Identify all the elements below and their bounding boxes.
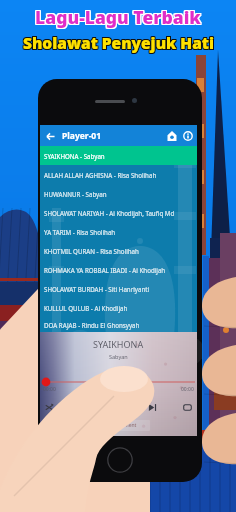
staticText: Sholawat Penyejuk Hati (22, 33, 213, 54)
staticText: SHOLAWAT BURDAH - Siti Hanriyanti (44, 285, 150, 293)
button[interactable]: Next (145, 400, 160, 415)
staticText: Sholawat Penyejuk Hati (23, 33, 214, 54)
button[interactable]: Back (43, 129, 57, 143)
staticText: Sholawat Penyejuk Hati (24, 32, 215, 53)
button[interactable]: Back (40, 125, 197, 146)
staticText: Lagu-Lagu Terbaik (35, 4, 201, 28)
button[interactable]: YA TARIM - Risa Sholihah (40, 222, 197, 241)
staticText: Lagu-Lagu Terbaik (36, 4, 202, 28)
button[interactable]: ALLAH ALLAH AGHISNA - Risa Sholihah (40, 165, 197, 184)
staticText: Lagu-Lagu Terbaik (36, 6, 202, 30)
button[interactable]: Home (107, 447, 133, 473)
staticText: Lagu-Lagu Terbaik (34, 4, 200, 28)
staticText: 00:00 (181, 386, 194, 393)
staticText: Lagu-Lagu Terbaik (35, 6, 201, 30)
staticText: YA TARIM - Risa Sholihah (44, 228, 116, 236)
staticText: Sholawat Penyejuk Hati (24, 31, 215, 52)
staticText: Sholawat Penyejuk Hati (22, 32, 213, 53)
staticText: Advertisement (102, 422, 137, 429)
button[interactable]: SYAIKHONA - Sabyan (40, 146, 197, 165)
staticText: Sholawat Penyejuk Hati (24, 33, 215, 54)
button[interactable]: KHOTMIL QURAN - Risa Sholihah (40, 241, 197, 260)
button[interactable]: SHOLAWAT NARIYAH - Ai Khodijah, Taufiq M… (40, 203, 197, 222)
staticText: Player-01 (62, 130, 102, 142)
button[interactable] (40, 378, 197, 386)
staticText: KHOTMIL QURAN - Risa Sholihah (44, 247, 139, 255)
staticText: SYAIKHONA - Sabyan (44, 152, 105, 160)
button[interactable]: KULLUL QULUB - Ai Khodijah (40, 298, 197, 317)
staticText: Sholawat Penyejuk Hati (23, 32, 214, 53)
staticText: Lagu-Lagu Terbaik (35, 5, 201, 29)
button[interactable]: Home (164, 128, 180, 144)
button[interactable]: Shuffle (42, 400, 57, 415)
staticText: Sholawat Penyejuk Hati (23, 31, 214, 52)
button[interactable]: Info (180, 128, 196, 144)
button[interactable]: ROHMAKA YA ROBBAL IBADI - Ai Khodijah (40, 260, 197, 279)
staticText: HUWANNUR - Sabyan (44, 190, 107, 198)
button[interactable]: HUWANNUR - Sabyan (40, 184, 197, 203)
staticText: DOA RAJAB - Rindu El Ghonsyyah (44, 321, 140, 329)
staticText: Lagu-Lagu Terbaik (34, 6, 200, 30)
button[interactable]: SHOLAWAT BURDAH - Siti Hanriyanti (40, 279, 197, 298)
button[interactable]: Repeat (180, 400, 195, 415)
staticText: ROHMAKA YA ROBBAL IBADI - Ai Khodijah (44, 266, 166, 274)
button[interactable]: DOA RAJAB - Rindu El Ghonsyyah (40, 317, 197, 332)
staticText: SHOLAWAT NARIYAH - Ai Khodijah, Taufiq M… (44, 209, 175, 217)
staticText: Sholawat Penyejuk Hati (22, 31, 213, 52)
staticText: Lagu-Lagu Terbaik (36, 5, 202, 29)
staticText: KULLUL QULUB - Ai Khodijah (44, 304, 128, 312)
staticText: ALLAH ALLAH AGHISNA - Risa Sholihah (44, 171, 157, 179)
staticText: Lagu-Lagu Terbaik (34, 5, 200, 29)
staticText: 00:00 (43, 386, 56, 393)
staticText: Sabyan (109, 353, 128, 360)
button[interactable]: Advertisement (88, 420, 150, 431)
staticText: SYAIKHONA (93, 338, 144, 350)
